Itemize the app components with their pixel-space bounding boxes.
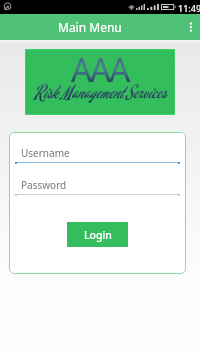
staticText: Login <box>84 228 112 242</box>
staticText: Risk Management Services <box>34 80 167 104</box>
button[interactable]: Login <box>67 222 128 247</box>
staticText: Main Menu <box>58 19 122 35</box>
staticText: 11:49 <box>178 2 200 14</box>
staticText: Password <box>21 178 67 192</box>
button[interactable]: More options <box>182 14 200 40</box>
staticText: Username <box>21 146 70 160</box>
staticText: AAA <box>71 47 129 92</box>
